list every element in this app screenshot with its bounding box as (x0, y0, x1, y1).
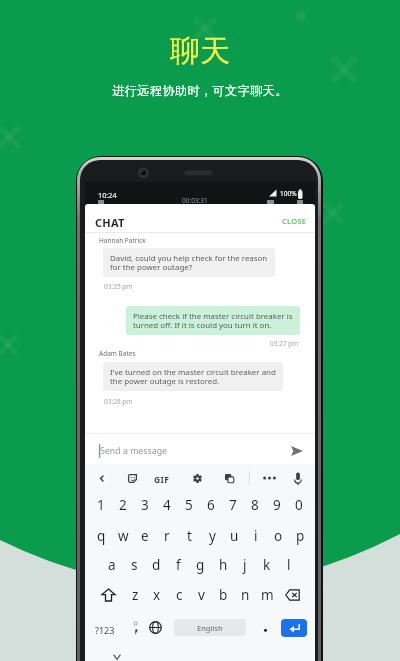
button[interactable]: x (146, 582, 168, 608)
staticText: CHAT (95, 215, 125, 230)
staticText: l (287, 556, 291, 574)
staticText: 6 (207, 496, 215, 514)
button[interactable]: Hide keyboard (113, 654, 121, 660)
button[interactable]: d (145, 552, 167, 578)
button[interactable]: 5 (178, 492, 200, 518)
staticText: 4 (163, 496, 171, 514)
staticText: 5 (185, 496, 193, 514)
button[interactable]: Translate (225, 474, 234, 483)
staticText: 9 (273, 496, 281, 514)
button[interactable]: GIF (154, 474, 170, 486)
staticText: r (164, 527, 170, 545)
button[interactable]: 3 (134, 492, 156, 518)
button[interactable]: l (278, 552, 300, 578)
button[interactable]: CLOSE (279, 214, 310, 228)
button[interactable]: Enter (281, 619, 307, 637)
button[interactable]: r (156, 523, 178, 549)
staticText: g (196, 556, 205, 574)
button[interactable]: n (234, 582, 256, 608)
button[interactable]: 2 (112, 492, 134, 518)
button[interactable]: t (178, 523, 200, 549)
button[interactable]: i (245, 523, 267, 549)
staticText: q (97, 527, 106, 545)
staticText: Send a message (100, 445, 168, 457)
button[interactable]: k (256, 552, 278, 578)
button[interactable]: 1 (90, 492, 112, 518)
staticText: h (219, 556, 228, 574)
button[interactable]: English (174, 619, 246, 636)
staticText: ?123 (95, 624, 115, 636)
button[interactable]: j (234, 552, 256, 578)
button[interactable]: g (189, 552, 211, 578)
button[interactable]: Voice input (294, 472, 302, 485)
button[interactable]: o (267, 523, 289, 549)
button[interactable]: More options (263, 475, 276, 481)
staticText: u (230, 527, 239, 545)
button[interactable]: f (167, 552, 189, 578)
staticText: 03:28 pm (104, 397, 133, 406)
button[interactable]: Change language (149, 621, 162, 634)
staticText: c (176, 586, 183, 604)
button[interactable]: 7 (222, 492, 244, 518)
button[interactable]: m (256, 582, 278, 608)
staticText: k (263, 556, 271, 574)
button[interactable]: 9 (266, 492, 288, 518)
button[interactable]: Shift (101, 588, 116, 602)
staticText: y (209, 527, 216, 545)
button[interactable]: v (190, 582, 212, 608)
button[interactable]: Stickers (128, 474, 137, 483)
button[interactable]: 4 (156, 492, 178, 518)
staticText: 03:25 pm (104, 282, 133, 291)
button[interactable]: Comma (132, 620, 140, 636)
button[interactable]: y (201, 523, 223, 549)
staticText: David, could you help check for the reas… (110, 253, 268, 272)
staticText: Please check if the master circuit break… (133, 311, 293, 330)
staticText: t (187, 527, 192, 545)
staticText: 00:03:31 (182, 196, 208, 205)
staticText: 10:24 (98, 190, 117, 200)
staticText: CLOSE (282, 216, 307, 226)
button[interactable]: ?123 (93, 621, 117, 639)
button[interactable]: e (134, 523, 156, 549)
staticText: 进行远程协助时，可文字聊天。 (112, 83, 288, 98)
button[interactable]: Send a message (85, 434, 315, 467)
button[interactable]: 6 (200, 492, 222, 518)
staticText: d (152, 556, 161, 574)
staticText: b (219, 586, 228, 604)
staticText: s (131, 556, 138, 574)
button[interactable]: h (212, 552, 234, 578)
staticText: 8 (251, 496, 259, 514)
button[interactable]: b (212, 582, 234, 608)
staticText: x (153, 586, 161, 604)
staticText: w (118, 527, 129, 545)
staticText: English (197, 623, 223, 633)
button[interactable]: s (123, 552, 145, 578)
button[interactable]: Backspace (285, 589, 300, 601)
staticText: f (176, 556, 181, 574)
staticText: 0 (295, 496, 303, 514)
button[interactable]: q (90, 523, 112, 549)
staticText: I've turned on the master circuit breake… (110, 367, 276, 386)
staticText: 7 (229, 496, 237, 514)
staticText: 100% (280, 189, 297, 198)
button[interactable]: w (112, 523, 134, 549)
staticText: 1 (97, 496, 105, 514)
button[interactable]: Settings (193, 474, 202, 483)
staticText: p (296, 527, 305, 545)
staticText: 聊天 (170, 32, 230, 70)
button[interactable]: Back (95, 471, 109, 485)
other: Send (291, 446, 303, 456)
staticText: Adam Bates (99, 349, 136, 358)
button[interactable]: 0 (288, 492, 310, 518)
button[interactable]: 8 (244, 492, 266, 518)
staticText: i (254, 527, 258, 545)
button[interactable]: u (223, 523, 245, 549)
staticText: 03:27 pm (270, 339, 299, 348)
button[interactable]: c (168, 582, 190, 608)
button[interactable]: a (101, 552, 123, 578)
button[interactable]: z (124, 582, 146, 608)
staticText: m (261, 586, 274, 604)
staticText: Hannah Patrick (99, 236, 146, 245)
button[interactable]: Period (261, 621, 270, 634)
button[interactable]: p (289, 523, 311, 549)
